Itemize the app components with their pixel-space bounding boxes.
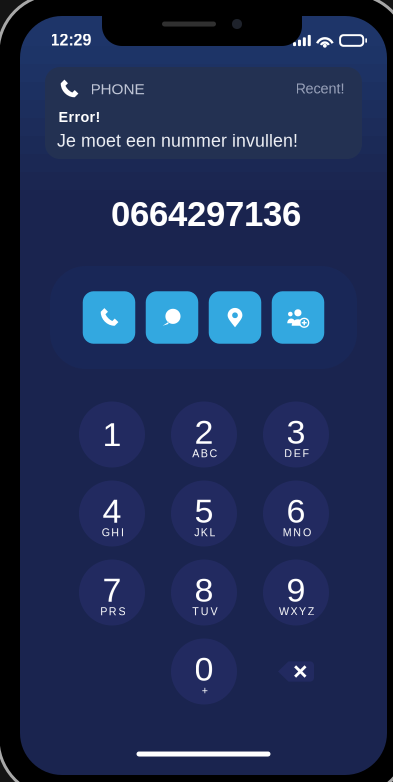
staticText: 3 [286, 413, 305, 451]
staticText: Je moet een nummer invullen! [57, 131, 298, 150]
button[interactable]: 2 [171, 401, 237, 467]
staticText: DEF [284, 447, 309, 459]
button[interactable]: Message [146, 291, 198, 344]
staticText: + [202, 684, 208, 696]
button[interactable]: 1 [79, 401, 145, 467]
staticText: 0664297136 [111, 195, 301, 233]
staticText: 1 [102, 415, 121, 453]
staticText: Error! [58, 109, 100, 125]
button[interactable]: 3 [263, 401, 329, 467]
staticText: JKL [194, 526, 215, 538]
button[interactable]: Add contact [272, 291, 324, 344]
button[interactable]: 5 [171, 480, 237, 546]
staticText: 12:29 [50, 31, 91, 49]
staticText: MNO [283, 526, 311, 538]
staticText: Recent! [295, 80, 344, 97]
button[interactable]: 6 [263, 480, 329, 546]
staticText: 0 [194, 650, 213, 688]
staticText: GHI [102, 526, 124, 538]
staticText: 9 [286, 571, 305, 609]
staticText: WXYZ [279, 605, 315, 617]
button[interactable]: Delete [263, 638, 329, 704]
staticText: PRS [100, 605, 125, 617]
button[interactable]: Call [83, 291, 135, 344]
staticText: 6 [286, 492, 305, 530]
button[interactable]: 0 [171, 638, 237, 704]
button[interactable]: 7 [79, 559, 145, 625]
button[interactable]: 9 [263, 559, 329, 625]
staticText: 2 [194, 413, 213, 451]
staticText: 5 [194, 492, 213, 530]
button[interactable]: Location [209, 291, 261, 344]
staticText: TUV [192, 605, 217, 617]
staticText: 8 [194, 571, 213, 609]
staticText: 7 [102, 571, 121, 609]
button[interactable]: 4 [79, 480, 145, 546]
button[interactable]: 8 [171, 559, 237, 625]
staticText: ABC [192, 447, 217, 459]
staticText: PHONE [90, 80, 144, 97]
staticText: 4 [102, 492, 121, 530]
